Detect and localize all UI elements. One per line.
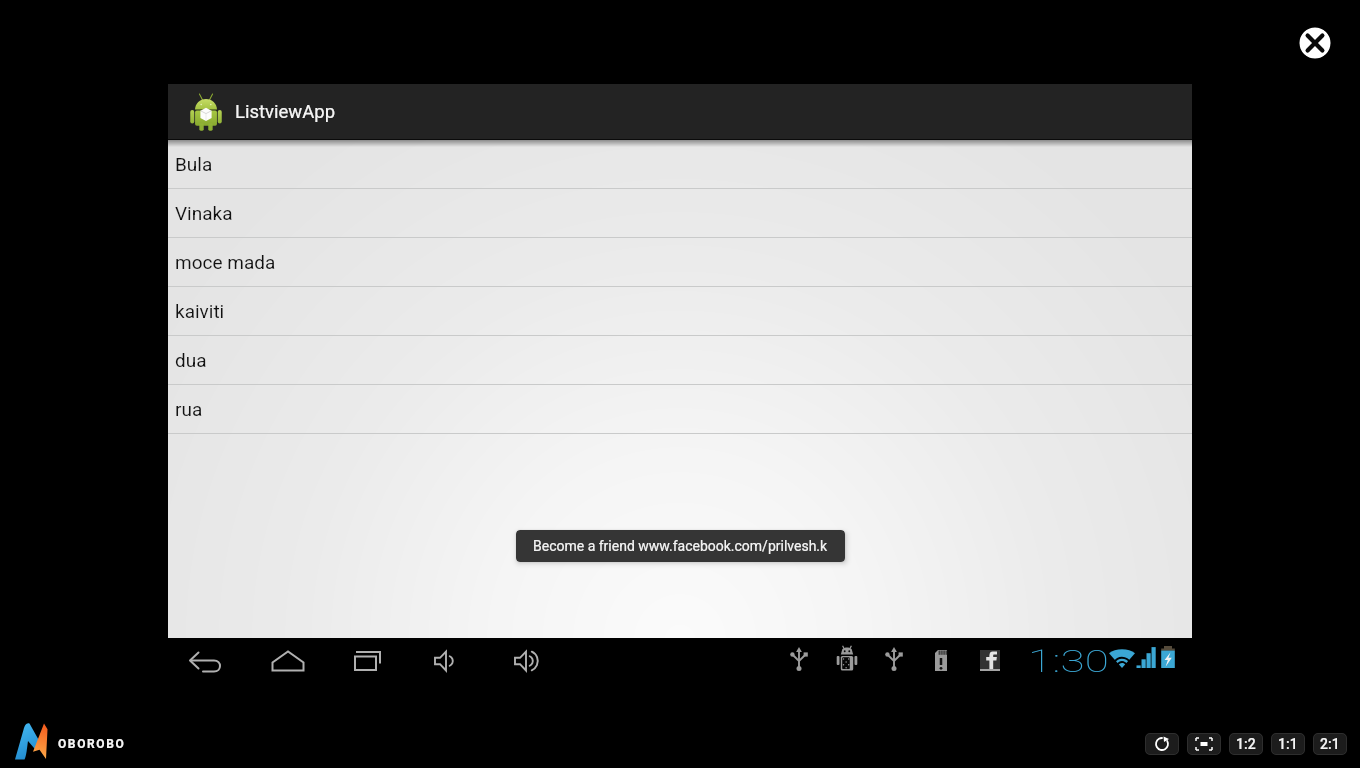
button[interactable]: moce mada <box>168 238 1192 286</box>
button[interactable]: rua <box>168 385 1192 433</box>
staticText: 2:1 <box>1320 736 1340 752</box>
staticText: kaiviti <box>175 300 225 322</box>
button[interactable]: dua <box>168 336 1192 384</box>
staticText: Become a friend www.facebook.com/prilves… <box>533 538 828 554</box>
staticText: rua <box>175 398 203 420</box>
button[interactable]: 1:1 <box>1271 733 1305 755</box>
staticText: moce mada <box>175 251 276 273</box>
button[interactable]: Close <box>1299 27 1331 59</box>
button[interactable]: Recent apps <box>342 638 394 684</box>
staticText: 1:1 <box>1278 736 1298 752</box>
button[interactable]: Moborobo <box>13 720 59 761</box>
staticText: ListviewApp <box>235 101 336 123</box>
button[interactable]: 1:2 <box>1229 733 1263 755</box>
button[interactable]: Back <box>182 638 234 684</box>
button[interactable]: Become a friend www.facebook.com/prilves… <box>516 530 845 562</box>
button[interactable]: Home <box>262 638 314 684</box>
staticText: dua <box>175 349 207 371</box>
staticText: 1:30 <box>1028 643 1110 679</box>
staticText: Bula <box>175 153 213 175</box>
button[interactable]: Vinaka <box>168 189 1192 237</box>
staticText: Vinaka <box>175 202 233 224</box>
button[interactable]: kaiviti <box>168 287 1192 335</box>
button[interactable]: Volume up <box>501 638 553 684</box>
button[interactable]: Bula <box>168 140 1192 188</box>
button[interactable]: Rotate <box>1145 733 1179 755</box>
button[interactable]: 2:1 <box>1313 733 1347 755</box>
staticText: 1:2 <box>1236 736 1256 752</box>
button[interactable]: Volume down <box>421 638 473 684</box>
button[interactable]: Fullscreen <box>1187 733 1221 755</box>
staticText: OBOROBO <box>58 737 126 751</box>
